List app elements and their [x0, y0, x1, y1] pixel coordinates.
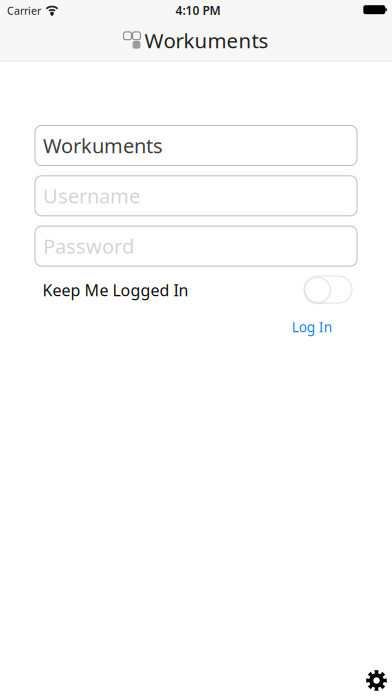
button[interactable]: Username — [35, 176, 357, 216]
button[interactable]: Settings — [361, 665, 392, 696]
staticText: 4:10 PM — [175, 2, 220, 18]
staticText: Log In — [292, 318, 332, 336]
staticText: Carrier — [7, 3, 41, 18]
button[interactable]: Password — [35, 226, 357, 266]
staticText: Username — [43, 182, 140, 209]
staticText: Workuments — [144, 27, 268, 54]
button[interactable]: Workuments — [35, 125, 357, 165]
staticText: Password — [43, 233, 134, 259]
button[interactable]: Keep Me Logged In — [304, 276, 352, 303]
staticText: Keep Me Logged In — [42, 279, 188, 301]
staticText: Workuments — [43, 132, 163, 159]
button[interactable]: Log In — [288, 314, 336, 340]
